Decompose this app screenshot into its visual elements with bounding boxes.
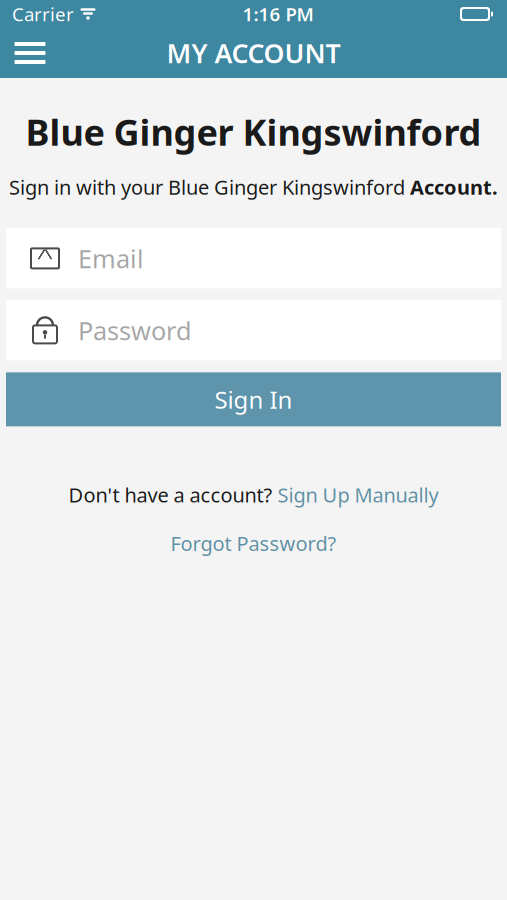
staticText: Sign Up Manually (277, 481, 438, 508)
staticText: Email (78, 241, 144, 275)
button[interactable]: Forgot Password? (160, 524, 346, 562)
staticText: Carrier (12, 2, 74, 26)
button[interactable]: Password (6, 300, 501, 360)
button[interactable]: Sign Up Manually (277, 481, 438, 508)
staticText: Password (78, 313, 192, 347)
staticText: 1:16 PM (242, 2, 313, 26)
staticText: Sign In (214, 383, 292, 415)
staticText: Sign in with your Blue Ginger Kingswinfo… (9, 174, 410, 200)
button[interactable]: Menu (8, 31, 52, 75)
button[interactable]: Sign In (6, 372, 501, 426)
staticText: Don't have a account? (68, 481, 277, 508)
button[interactable]: Email (6, 228, 501, 288)
staticText: Blue Ginger Kingswinford (25, 108, 481, 156)
staticText: MY ACCOUNT (166, 35, 340, 71)
staticText: Account. (410, 174, 498, 200)
staticText: Forgot Password? (170, 530, 336, 556)
